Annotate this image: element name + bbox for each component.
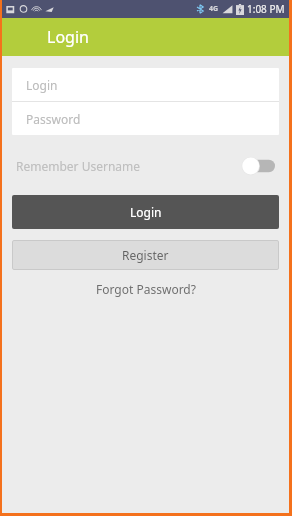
staticText: Remember Username: [16, 158, 141, 174]
staticText: Login: [26, 77, 58, 93]
staticText: Login: [130, 204, 162, 220]
button[interactable]: Remember Username toggle: [241, 156, 275, 176]
button[interactable]: Remember Username: [2, 152, 289, 180]
button[interactable]: Login: [12, 195, 279, 229]
button[interactable]: Register: [12, 240, 279, 270]
button[interactable]: Forgot Password?: [90, 279, 202, 299]
staticText: 1:08 PM: [247, 2, 285, 16]
button[interactable]: Password: [12, 102, 279, 135]
staticText: Password: [26, 111, 81, 127]
staticText: 4G: [209, 4, 219, 14]
staticText: Login: [47, 26, 89, 48]
staticText: Forgot Password?: [96, 281, 196, 297]
button[interactable]: Login: [12, 68, 279, 101]
staticText: Register: [122, 247, 169, 263]
